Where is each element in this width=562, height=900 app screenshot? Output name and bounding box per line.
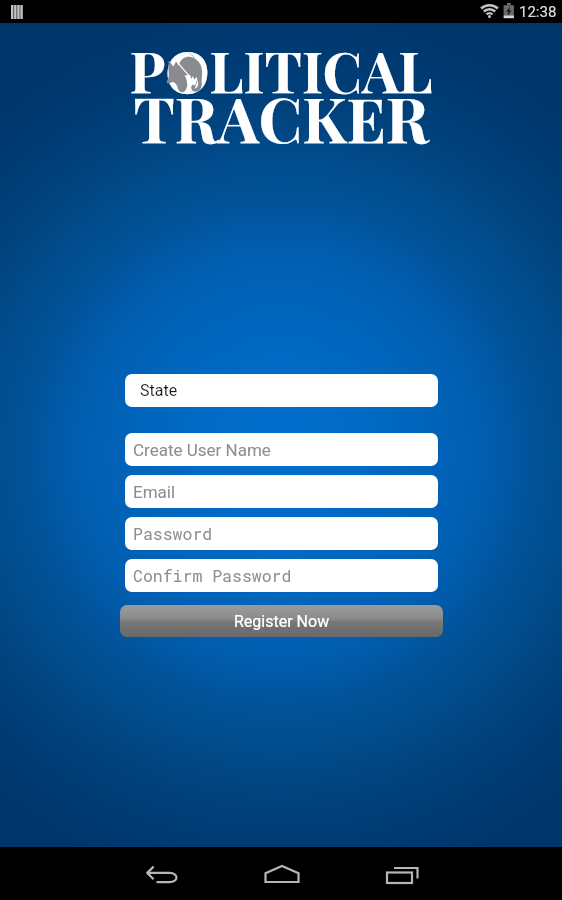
button[interactable]: State [125,374,438,407]
button[interactable]: Register Now [120,605,443,637]
staticText: 12:38 [519,3,557,21]
staticText: Register Now [234,612,330,631]
staticText: Create User Name [133,440,271,460]
button[interactable]: Back [118,847,204,900]
button[interactable]: Home [236,847,322,900]
button[interactable]: Password [125,517,438,550]
button[interactable]: Confirm Password [125,559,438,592]
staticText: Email [133,482,176,502]
staticText: Password [133,523,213,545]
button[interactable]: Email [125,475,438,508]
button[interactable]: Create User Name [125,433,438,466]
button[interactable]: Recent apps [354,847,440,900]
staticText: Confirm Password [133,565,292,587]
staticText: TRACKER [133,76,429,159]
staticText: POLITICAL [129,32,433,107]
staticText: State [140,381,178,400]
